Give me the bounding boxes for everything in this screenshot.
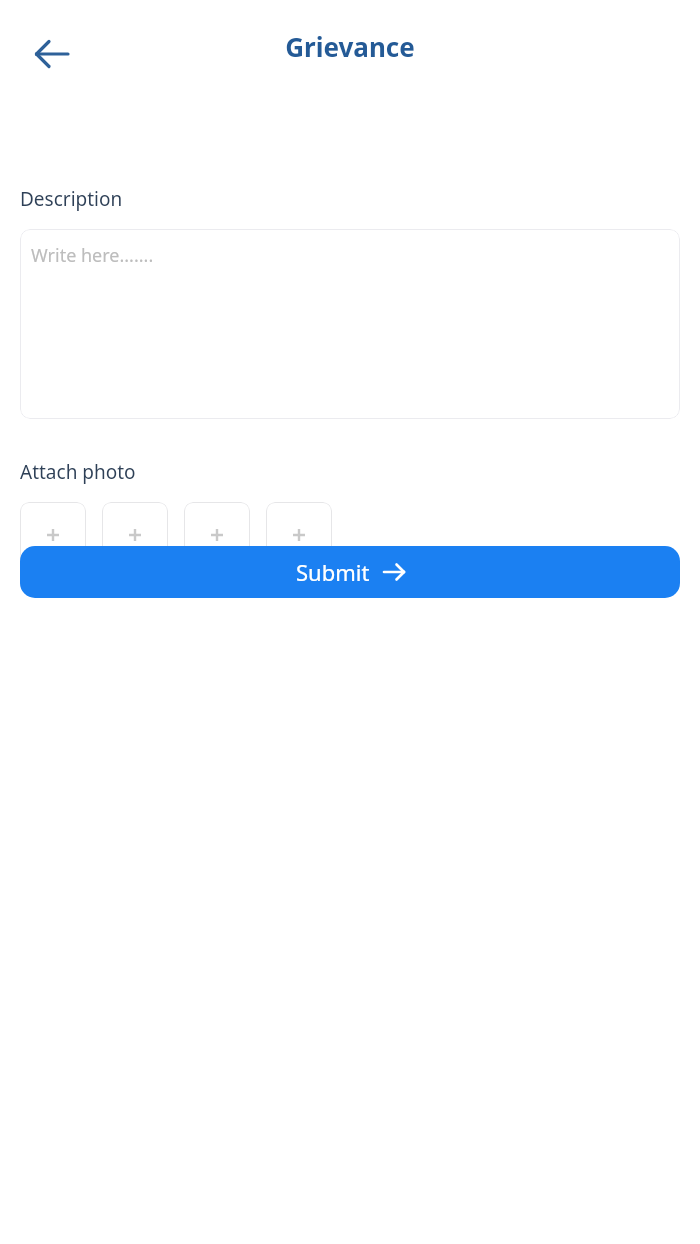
button[interactable]: Add photo: [102, 502, 168, 567]
staticText: Grievance: [0, 29, 700, 64]
button[interactable]: Back: [24, 26, 80, 82]
button[interactable]: Submit: [20, 546, 680, 598]
button[interactable]: Add photo: [184, 502, 250, 567]
button[interactable]: Write here.......: [20, 229, 680, 419]
staticText: Attach photo: [20, 459, 136, 485]
staticText: Write here.......: [31, 243, 154, 268]
button[interactable]: Add photo: [266, 502, 332, 567]
button[interactable]: Add photo: [20, 502, 86, 567]
staticText: Submit: [296, 557, 370, 587]
staticText: Description: [20, 186, 123, 212]
